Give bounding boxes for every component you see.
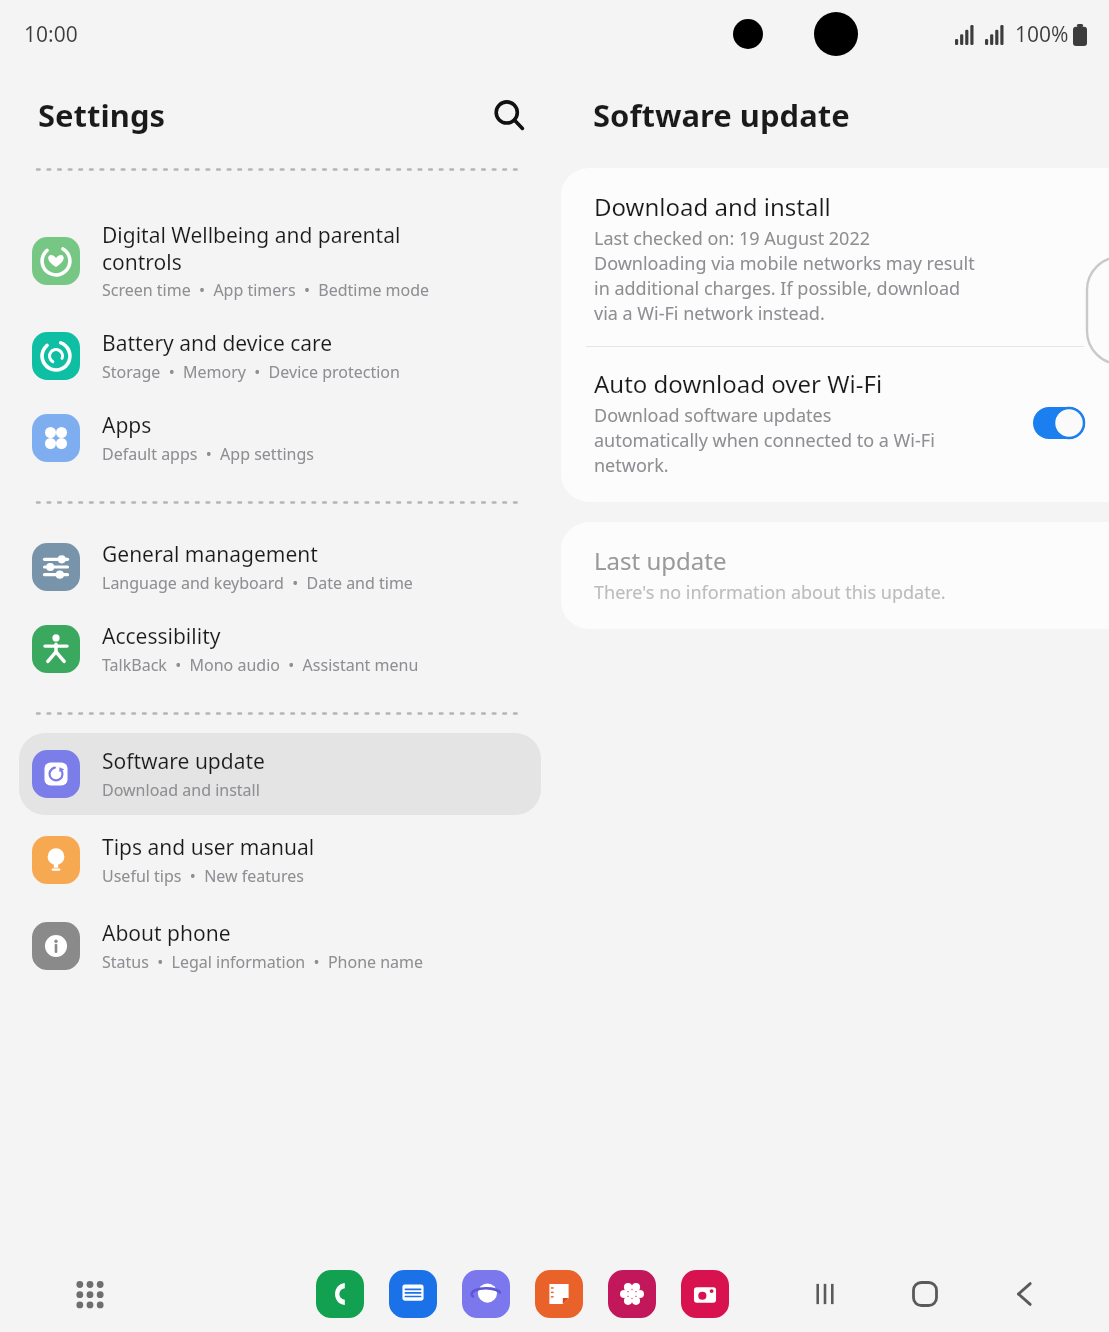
button[interactable]: Recent apps <box>801 1270 849 1318</box>
button[interactable]: Notes <box>535 1270 583 1318</box>
staticText: Auto download over Wi-Fi <box>594 367 883 400</box>
staticText: Tips and user manual <box>102 833 315 862</box>
button[interactable]: Back <box>1001 1270 1049 1318</box>
button[interactable]: Battery and device care <box>19 315 541 397</box>
button[interactable]: Apps <box>64 1268 116 1320</box>
staticText: Software update <box>593 94 850 136</box>
button[interactable]: Apps <box>19 397 541 479</box>
staticText: Download software updates automatically … <box>594 403 935 478</box>
button[interactable]: Auto download over Wi-Fi <box>561 347 1109 502</box>
staticText: General management <box>102 540 318 569</box>
staticText: Apps <box>102 411 152 440</box>
staticText: Status • Legal information • Phone name <box>102 951 424 973</box>
staticText: TalkBack • Mono audio • Assistant menu <box>102 654 419 676</box>
button[interactable]: Download and install <box>1087 257 1109 364</box>
button[interactable]: Camera <box>681 1270 729 1318</box>
button[interactable]: Download and install <box>561 168 1109 346</box>
staticText: 10:00 <box>24 20 78 49</box>
button[interactable]: Internet <box>462 1270 510 1318</box>
staticText: Last checked on: 19 August 2022 Download… <box>594 226 975 326</box>
button[interactable]: About phone <box>19 905 541 987</box>
button[interactable]: Software update <box>19 733 541 815</box>
staticText: Accessibility <box>102 622 221 651</box>
button[interactable]: Digital Wellbeing and parental controls <box>19 207 541 315</box>
staticText: 100% <box>1015 20 1069 49</box>
staticText: Digital Wellbeing and parental controls <box>102 221 401 276</box>
button[interactable]: Auto download over Wi-Fi toggle <box>1033 407 1085 439</box>
button[interactable]: Tips and user manual <box>19 819 541 901</box>
button[interactable]: Messages <box>389 1270 437 1318</box>
staticText: Last update <box>594 544 727 577</box>
button[interactable]: Phone <box>316 1270 364 1318</box>
staticText: About phone <box>102 919 231 948</box>
button[interactable]: Accessibility <box>19 608 541 690</box>
staticText: Software update <box>102 747 265 776</box>
button[interactable]: General management <box>19 526 541 608</box>
staticText: Language and keyboard • Date and time <box>102 572 413 594</box>
button[interactable]: Home <box>901 1270 949 1318</box>
staticText: Screen time • App timers • Bedtime mode <box>102 279 430 301</box>
button[interactable]: Search <box>482 88 536 142</box>
staticText: Download and install <box>594 190 831 223</box>
staticText: Download and install <box>102 779 260 801</box>
button[interactable]: Gallery <box>608 1270 656 1318</box>
staticText: Battery and device care <box>102 329 333 358</box>
staticText: Settings <box>38 94 166 136</box>
staticText: Default apps • App settings <box>102 443 314 465</box>
staticText: Storage • Memory • Device protection <box>102 361 400 383</box>
button[interactable]: Last update <box>561 522 1109 629</box>
staticText: Useful tips • New features <box>102 865 304 887</box>
staticText: There's no information about this update… <box>594 580 946 605</box>
